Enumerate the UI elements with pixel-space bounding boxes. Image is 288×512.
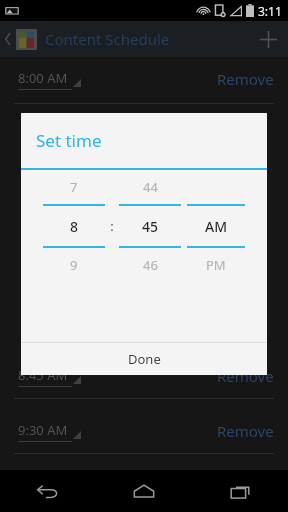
- staticText: Done: [128, 350, 161, 368]
- staticText: 8: [70, 217, 79, 236]
- button[interactable]: Remove: [203, 63, 288, 95]
- button[interactable]: 8: [43, 206, 105, 246]
- button[interactable]: Recent apps: [192, 470, 288, 512]
- button[interactable]: Remove: [203, 360, 288, 392]
- staticText: 9: [70, 256, 78, 274]
- staticText: Remove: [217, 421, 274, 441]
- button[interactable]: 45: [119, 206, 181, 246]
- staticText: 9:30 AM: [18, 421, 68, 439]
- staticText: Set time: [36, 129, 102, 152]
- staticText: Remove: [217, 366, 274, 386]
- staticText: 7: [70, 178, 78, 196]
- button[interactable]: Add: [248, 21, 288, 57]
- staticText: :: [105, 217, 119, 235]
- staticText: AM: [205, 217, 228, 236]
- staticText: Content Schedule: [45, 29, 248, 49]
- staticText: 8:45 AM: [18, 366, 68, 384]
- staticText: Remove: [217, 69, 274, 89]
- button[interactable]: Remove: [203, 415, 288, 447]
- staticText: 44: [143, 178, 158, 196]
- button[interactable]: Navigate up: [0, 21, 16, 57]
- button[interactable]: 9:30 AM: [0, 409, 288, 453]
- button[interactable]: Home: [96, 470, 192, 512]
- staticText: 46: [143, 256, 158, 274]
- button[interactable]: 8:00 AM: [0, 57, 288, 101]
- button[interactable]: Back: [0, 470, 96, 512]
- button[interactable]: Done: [21, 343, 267, 375]
- staticText: 3:11: [258, 3, 282, 19]
- staticText: 8:00 AM: [18, 69, 68, 87]
- button[interactable]: 8:45 AM: [0, 354, 288, 398]
- staticText: 45: [142, 217, 159, 236]
- button[interactable]: AM: [187, 206, 245, 246]
- staticText: PM: [206, 256, 226, 274]
